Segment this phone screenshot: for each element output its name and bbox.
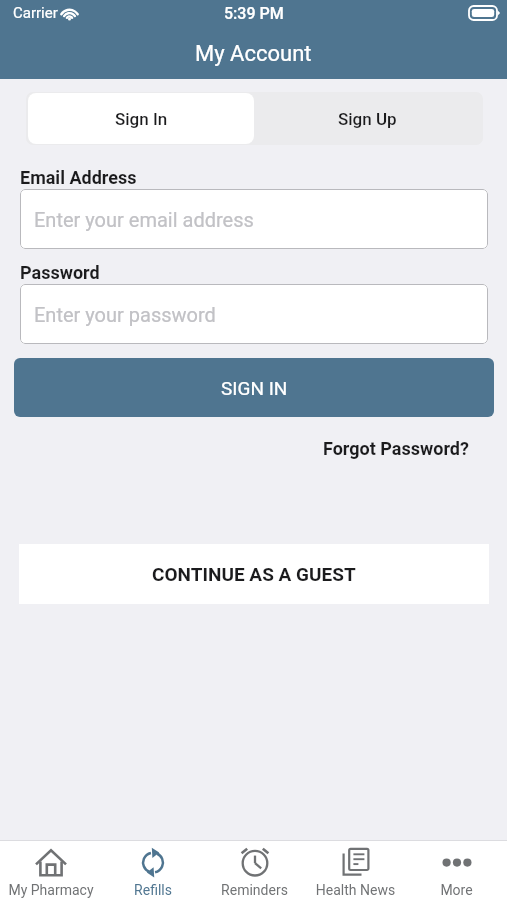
other: Battery [469,6,500,20]
button[interactable]: SIGN IN [14,358,494,417]
button[interactable]: More [406,840,507,900]
staticText: Email Address [20,167,137,188]
staticText: Forgot Password? [323,438,469,459]
staticText: Health News [305,882,406,898]
button[interactable]: CONTINUE AS A GUEST [19,544,489,604]
staticText: Refills [102,882,204,898]
other: Wi-Fi [60,6,79,20]
staticText: Enter your password [34,303,216,326]
button[interactable]: Forgot Password? [315,434,477,463]
staticText: Carrier [13,4,58,22]
staticText: More [406,882,507,898]
other: My Pharmacy [35,847,67,877]
staticText: Reminders [204,882,305,898]
button[interactable]: Reminders [204,840,305,900]
button[interactable]: Sign Up [254,93,481,144]
other: Refills [137,847,169,877]
other: Health News [340,847,372,877]
staticText: Password [20,262,100,283]
staticText: CONTINUE AS A GUEST [152,563,356,585]
staticText: SIGN IN [221,377,288,399]
staticText: My Pharmacy [0,882,102,898]
button[interactable]: Health News [305,840,406,900]
staticText: Sign Up [338,109,397,129]
staticText: Sign In [115,109,168,129]
other: More [441,847,473,877]
button[interactable]: Enter your email address [20,189,488,249]
staticText: My Account [195,41,312,67]
staticText: 5:39 PM [224,4,284,23]
other: Reminders [239,847,271,877]
button[interactable]: Enter your password [20,284,488,344]
staticText: Enter your email address [34,208,254,231]
button[interactable]: Refills [102,840,204,900]
button[interactable]: Sign In [28,93,254,144]
button[interactable]: My Pharmacy [0,840,102,900]
